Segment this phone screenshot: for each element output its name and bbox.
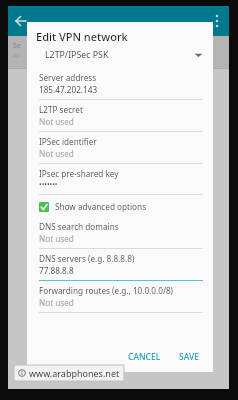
button[interactable]: L2TP secret [27,100,213,132]
staticText: Se [13,41,21,51]
staticText: IPsec pre-shared key [39,168,119,179]
staticText: Show advanced options [55,201,147,212]
staticText: SAVE [179,351,199,363]
staticText: CANCEL [128,351,161,363]
staticText: L2TP/IPSec PSK [45,49,109,61]
button[interactable]: L2TP/IPSec PSK [27,49,213,61]
staticText: Server address [39,72,97,83]
staticText: Edit VPN network [36,29,128,44]
button[interactable]: IPsec pre-shared key [27,164,213,195]
staticText: ••••••• [39,180,58,190]
button[interactable]: SAVE [173,348,205,366]
staticText: L2TP secret [39,104,83,115]
staticText: IPSec identifier [39,136,97,147]
button[interactable]: CANCEL [122,348,167,366]
staticText: Not used [39,148,74,159]
button[interactable]: DNS servers (e.g. 8.8.8.8) [27,249,213,281]
staticText: 77.88.8.8 [39,265,74,276]
staticText: www.arabphones.net [29,367,120,379]
button[interactable]: Forwarding routes (e.g., 10.0.0.0/8) [27,281,213,313]
staticText: DNS servers (e.g. 8.8.8.8) [39,253,135,264]
staticText: Forwarding routes (e.g., 10.0.0.0/8) [39,285,174,296]
staticText: 185.47.202.143 [39,84,98,95]
button[interactable]: Server address [27,68,213,100]
staticText: Not used [39,233,74,244]
button[interactable]: Show advanced options [27,195,213,217]
staticText: DNS search domains [39,221,119,232]
staticText: Not used [39,297,74,308]
button[interactable]: More options [208,12,226,30]
button[interactable]: IPSec identifier [27,132,213,164]
staticText: Not used [39,116,74,127]
staticText: PP [13,52,20,59]
button[interactable]: DNS search domains [27,217,213,249]
button[interactable]: Back [10,10,32,32]
